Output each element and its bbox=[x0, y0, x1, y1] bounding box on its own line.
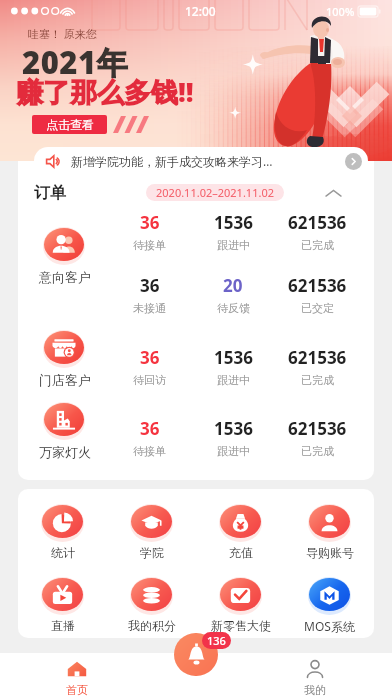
staticText: 1536 bbox=[214, 417, 253, 440]
button[interactable]: 我的积分 bbox=[107, 575, 196, 633]
staticText: 20 bbox=[223, 274, 243, 297]
button[interactable]: Collapse bbox=[323, 183, 343, 203]
staticText: 我的 bbox=[304, 683, 326, 696]
button[interactable]: 充值 bbox=[196, 502, 285, 560]
button[interactable]: 首页 bbox=[18, 653, 136, 696]
staticText: 直播 bbox=[51, 618, 75, 633]
staticText: 点击查看 bbox=[46, 117, 94, 132]
staticText: 意向客户 bbox=[39, 269, 91, 285]
button[interactable]: 万家灯火 bbox=[43, 400, 85, 440]
staticText: MOS系统 bbox=[304, 618, 355, 634]
staticText: 跟进中 bbox=[217, 373, 250, 387]
button[interactable]: 2020.11.02–2021.11.02 bbox=[146, 184, 284, 201]
button[interactable]: 导购账号 bbox=[285, 502, 374, 560]
staticText: 2020.11.02–2021.11.02 bbox=[156, 185, 274, 200]
staticText: 赚了那么多钱!! bbox=[16, 73, 194, 110]
staticText: 跟进中 bbox=[217, 238, 250, 252]
staticText: 36 bbox=[140, 274, 160, 297]
staticText: 12:00 bbox=[185, 3, 216, 19]
staticText: 621536 bbox=[288, 211, 347, 234]
staticText: 已完成 bbox=[301, 444, 334, 458]
staticText: 统计 bbox=[51, 545, 75, 560]
button[interactable]: 点击查看 bbox=[32, 115, 107, 134]
staticText: 学院 bbox=[140, 545, 164, 560]
staticText: 2021年 bbox=[22, 41, 129, 83]
button[interactable]: 统计 bbox=[18, 502, 107, 560]
staticText: 1536 bbox=[214, 211, 253, 234]
staticText: 待反馈 bbox=[217, 301, 250, 315]
staticText: 36 bbox=[140, 417, 160, 440]
staticText: 621536 bbox=[288, 274, 347, 297]
staticText: 136 bbox=[207, 633, 226, 648]
staticText: 跟进中 bbox=[217, 444, 250, 458]
staticText: 未接通 bbox=[133, 301, 166, 315]
button[interactable]: 新增学院功能，新手成交攻略来学习… bbox=[34, 147, 368, 175]
staticText: 万家灯火 bbox=[39, 444, 91, 460]
button[interactable]: MOS系统 bbox=[285, 575, 374, 634]
staticText: 门店客户 bbox=[39, 372, 91, 388]
staticText: 621536 bbox=[288, 346, 347, 369]
staticText: 36 bbox=[140, 211, 160, 234]
staticText: 导购账号 bbox=[306, 545, 354, 560]
button[interactable]: 门店客户 bbox=[43, 328, 85, 368]
button[interactable]: 直播 bbox=[18, 575, 107, 633]
staticText: 我的积分 bbox=[128, 618, 176, 633]
staticText: 待回访 bbox=[133, 373, 166, 387]
button[interactable]: 消息 bbox=[174, 633, 218, 676]
button[interactable]: 学院 bbox=[107, 502, 196, 560]
button[interactable]: 我的 bbox=[255, 653, 374, 696]
button[interactable]: More bbox=[345, 153, 362, 170]
staticText: 100% bbox=[326, 4, 355, 19]
staticText: 哇塞！ 原来您 bbox=[28, 26, 97, 41]
staticText: 已完成 bbox=[301, 238, 334, 252]
button[interactable]: 新零售大使 bbox=[196, 575, 285, 633]
staticText: 订单 bbox=[34, 183, 66, 203]
staticText: 1536 bbox=[214, 346, 253, 369]
staticText: 621536 bbox=[288, 417, 347, 440]
staticText: 新零售大使 bbox=[211, 618, 271, 633]
staticText: 36 bbox=[140, 346, 160, 369]
staticText: 待接单 bbox=[133, 444, 166, 458]
staticText: 新增学院功能，新手成交攻略来学习… bbox=[71, 153, 341, 169]
staticText: 已交定 bbox=[301, 301, 334, 315]
staticText: 已完成 bbox=[301, 373, 334, 387]
button[interactable]: 意向客户 bbox=[43, 225, 85, 265]
staticText: 充值 bbox=[229, 545, 253, 560]
staticText: 待接单 bbox=[133, 238, 166, 252]
staticText: 首页 bbox=[66, 683, 88, 696]
